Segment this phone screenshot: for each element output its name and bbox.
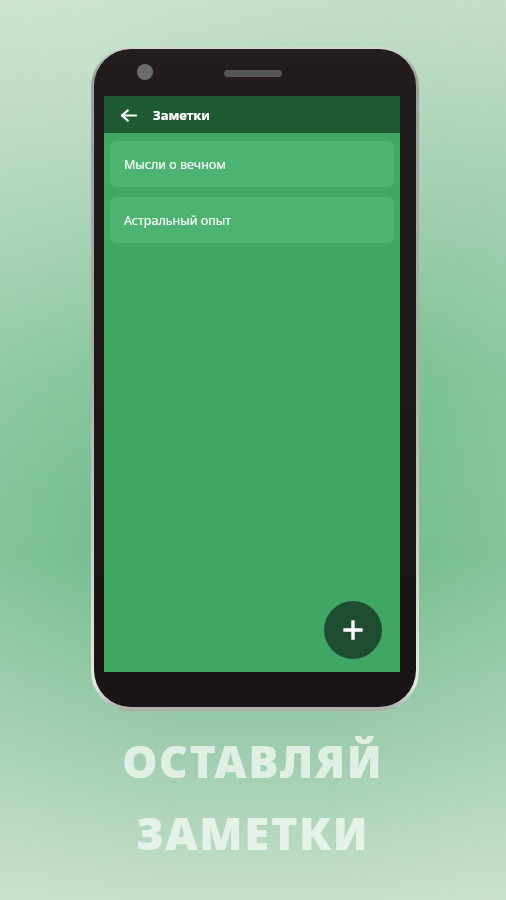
button[interactable]: Add note [324, 601, 382, 659]
staticText: ОСТАВЛЯЙ [0, 731, 506, 791]
button[interactable]: Мысли о вечном [110, 141, 394, 187]
staticText: Заметки [153, 106, 211, 124]
staticText: Мысли о вечном [124, 156, 226, 173]
staticText: ЗАМЕТКИ [0, 803, 506, 863]
button[interactable]: Back [115, 102, 141, 128]
staticText: Астральный опыт [124, 212, 232, 229]
button[interactable]: Астральный опыт [110, 197, 394, 243]
